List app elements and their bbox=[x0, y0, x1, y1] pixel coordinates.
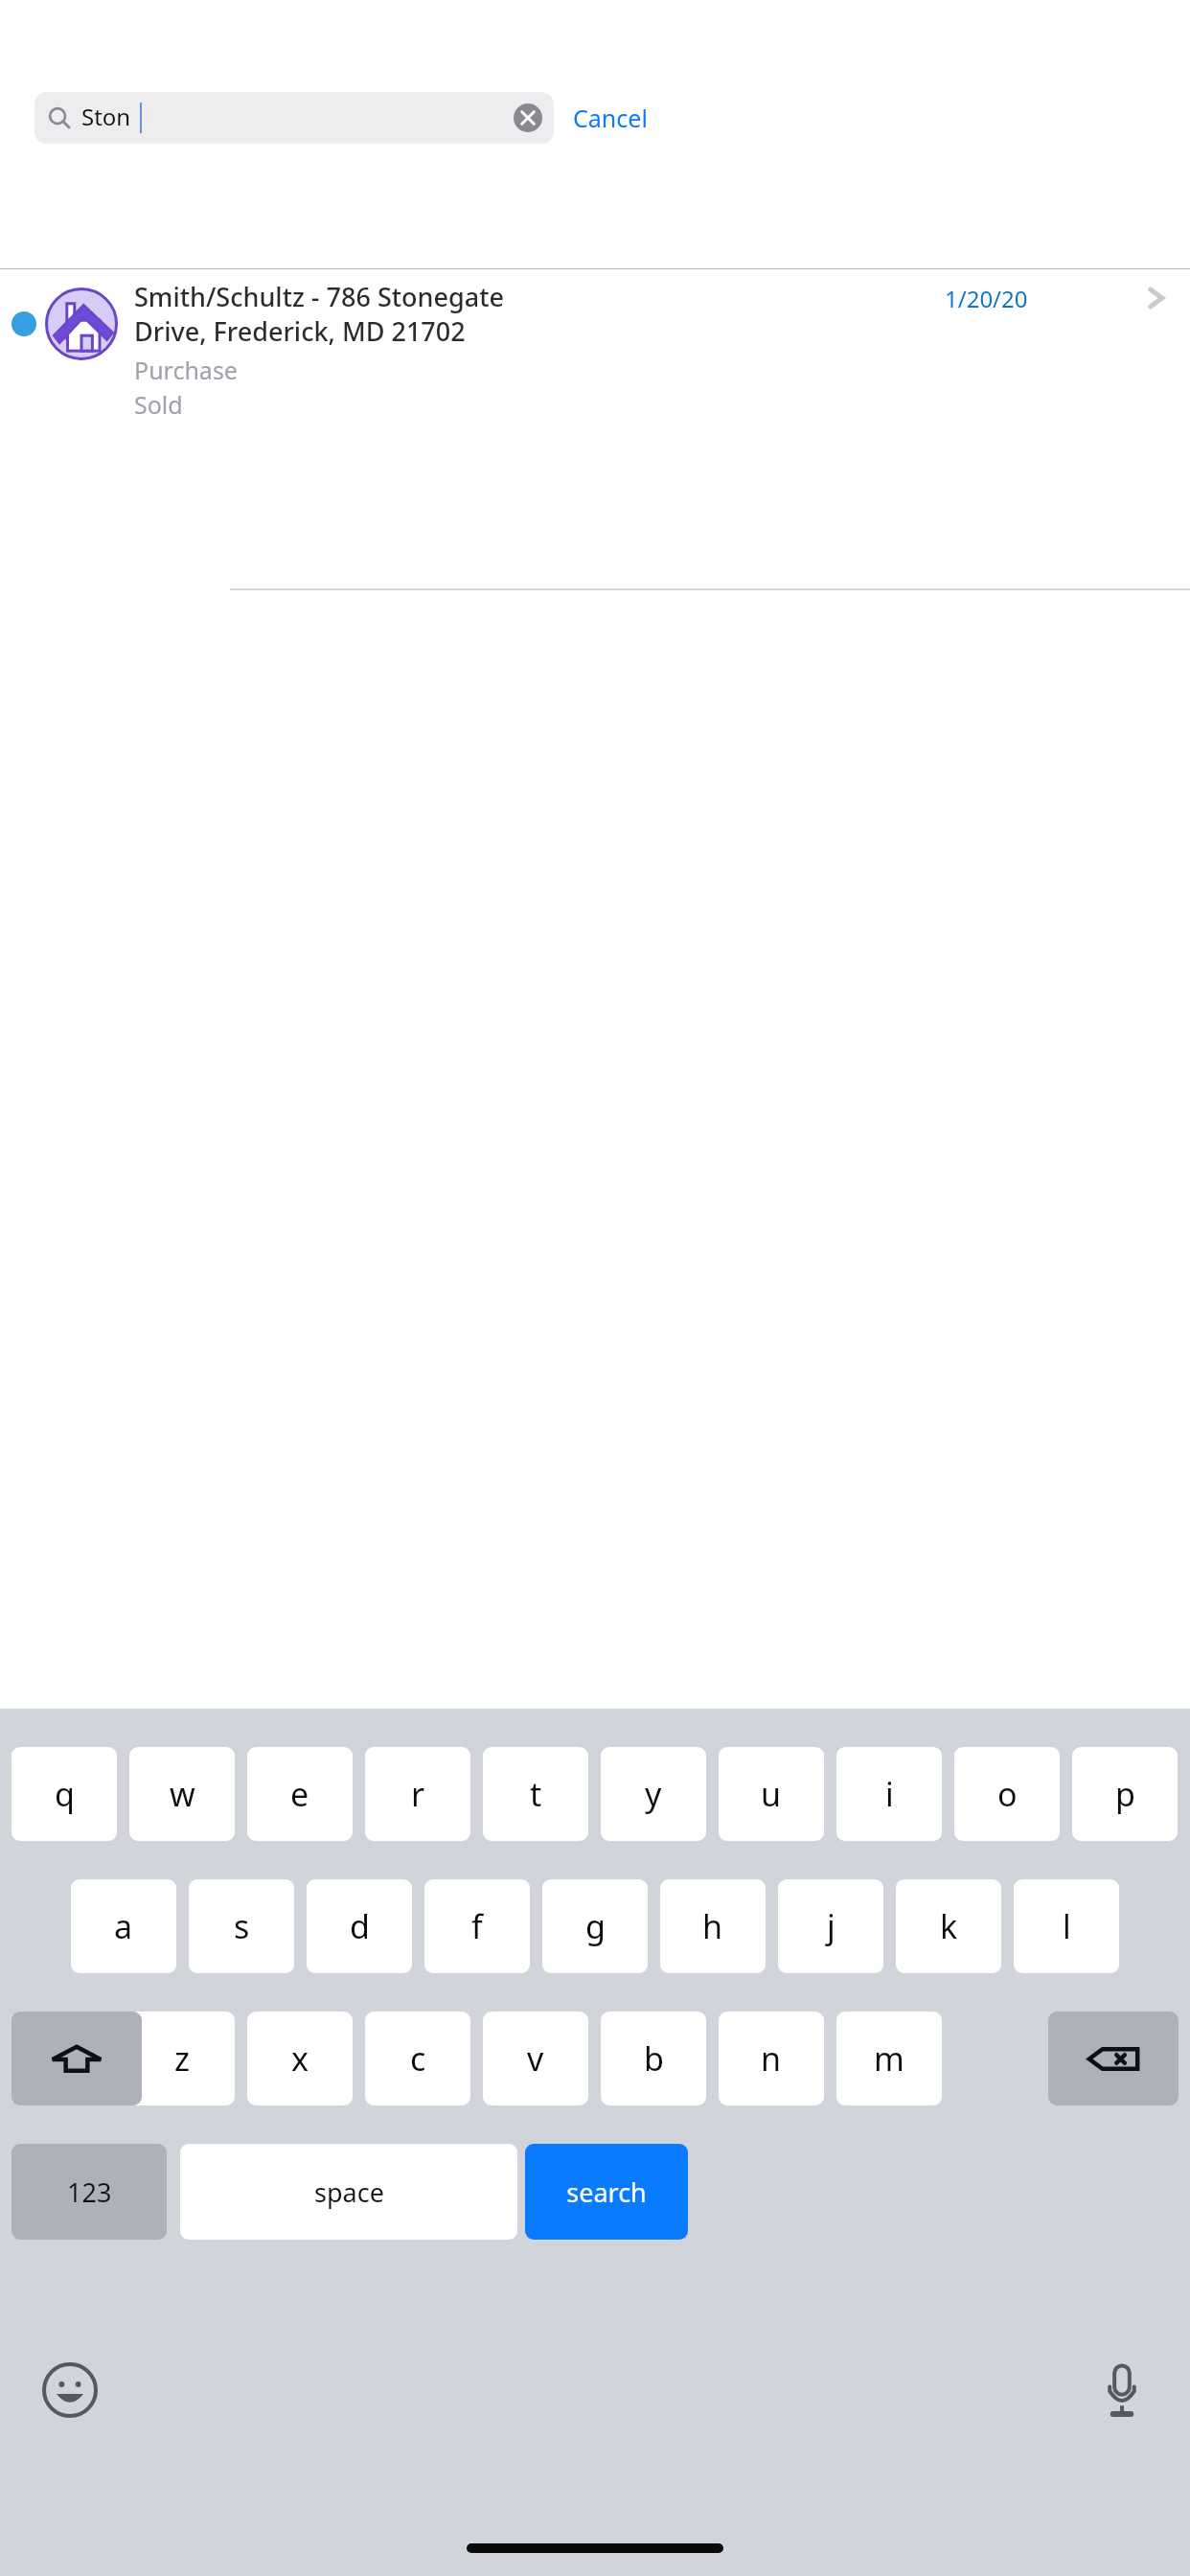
staticText: t bbox=[530, 1772, 542, 1816]
button[interactable]: r bbox=[365, 1747, 470, 1841]
button[interactable]: j bbox=[778, 1879, 883, 1973]
button[interactable]: c bbox=[365, 2012, 470, 2105]
staticText: o bbox=[997, 1772, 1018, 1816]
button[interactable]: search bbox=[525, 2144, 688, 2240]
staticText: x bbox=[291, 2036, 309, 2081]
button[interactable]: g bbox=[542, 1879, 648, 1973]
staticText: 1/20/20 bbox=[945, 283, 1028, 314]
staticText: p bbox=[1115, 1772, 1135, 1816]
button[interactable]: x bbox=[247, 2012, 353, 2105]
staticText: space bbox=[314, 2174, 384, 2210]
button[interactable]: d bbox=[307, 1879, 412, 1973]
button[interactable]: y bbox=[601, 1747, 706, 1841]
button[interactable]: u bbox=[719, 1747, 824, 1841]
button[interactable]: i bbox=[836, 1747, 942, 1841]
staticText: b bbox=[644, 2036, 664, 2081]
button[interactable]: a bbox=[71, 1879, 176, 1973]
staticText: s bbox=[234, 1904, 250, 1948]
staticText: q bbox=[55, 1772, 75, 1816]
button[interactable]: o bbox=[954, 1747, 1060, 1841]
button[interactable]: q bbox=[11, 1747, 117, 1841]
staticText: Sold bbox=[134, 388, 183, 421]
staticText: j bbox=[827, 1904, 835, 1948]
staticText: m bbox=[874, 2036, 904, 2081]
staticText: z bbox=[174, 2036, 190, 2081]
button[interactable]: Clear text bbox=[514, 103, 542, 132]
staticText: u bbox=[761, 1772, 782, 1816]
button[interactable]: m bbox=[836, 2012, 942, 2105]
button[interactable]: Shift bbox=[11, 2012, 142, 2105]
staticText: w bbox=[170, 1772, 195, 1816]
button[interactable]: v bbox=[483, 2012, 588, 2105]
button[interactable]: k bbox=[896, 1879, 1001, 1973]
button[interactable]: b bbox=[601, 2012, 706, 2105]
staticText: v bbox=[527, 2036, 544, 2081]
staticText: Smith/Schultz - 786 Stonegate Drive, Fre… bbox=[134, 279, 709, 349]
button[interactable]: Cancel bbox=[573, 94, 648, 142]
staticText: Purchase bbox=[134, 354, 238, 386]
staticText: n bbox=[761, 2036, 782, 2081]
staticText: l bbox=[1063, 1904, 1071, 1948]
button[interactable]: f bbox=[424, 1879, 530, 1973]
staticText: a bbox=[114, 1904, 133, 1948]
staticText: k bbox=[940, 1904, 958, 1948]
button[interactable]: space bbox=[180, 2144, 517, 2240]
staticText: i bbox=[885, 1772, 894, 1816]
button[interactable]: h bbox=[660, 1879, 766, 1973]
staticText: e bbox=[290, 1772, 309, 1816]
button[interactable]: l bbox=[1014, 1879, 1119, 1973]
button[interactable]: s bbox=[189, 1879, 294, 1973]
button[interactable]: n bbox=[719, 2012, 824, 2105]
button[interactable]: w bbox=[129, 1747, 235, 1841]
staticText: Cancel bbox=[573, 102, 648, 134]
button[interactable]: Ston bbox=[34, 92, 554, 144]
button[interactable]: t bbox=[483, 1747, 588, 1841]
button[interactable]: p bbox=[1072, 1747, 1178, 1841]
staticText: search bbox=[566, 2174, 647, 2210]
button[interactable]: 123 bbox=[11, 2144, 167, 2240]
staticText: 123 bbox=[67, 2174, 112, 2210]
button[interactable]: Backspace bbox=[1048, 2012, 1179, 2105]
button[interactable]: z bbox=[129, 2012, 235, 2105]
staticText: f bbox=[471, 1904, 483, 1948]
staticText: g bbox=[585, 1904, 606, 1948]
button[interactable]: Dictation bbox=[1094, 2362, 1150, 2418]
staticText: h bbox=[702, 1904, 723, 1948]
staticText: Ston bbox=[81, 101, 131, 132]
staticText: r bbox=[411, 1772, 425, 1816]
staticText: y bbox=[645, 1772, 662, 1816]
button[interactable]: Smith/Schultz - 786 Stonegate Drive, Fre… bbox=[0, 269, 1190, 589]
staticText: d bbox=[350, 1904, 370, 1948]
button[interactable]: e bbox=[247, 1747, 353, 1841]
button[interactable]: Emoji keyboard bbox=[42, 2362, 98, 2418]
staticText: c bbox=[410, 2036, 426, 2081]
